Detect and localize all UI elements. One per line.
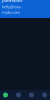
staticText: Kelly Johnson bbox=[2, 0, 22, 3]
staticText: kelly@example.com bbox=[2, 4, 21, 15]
